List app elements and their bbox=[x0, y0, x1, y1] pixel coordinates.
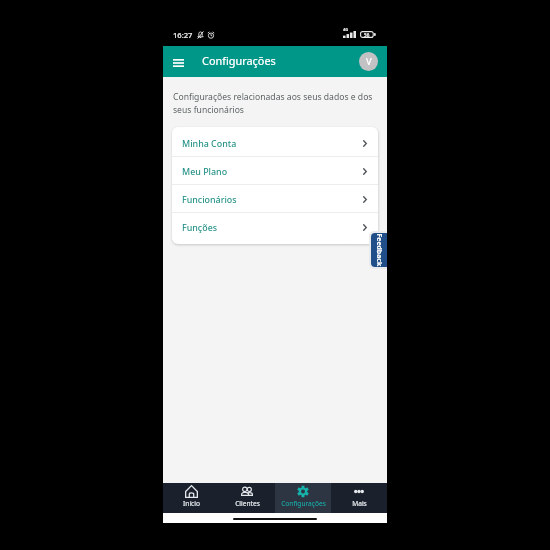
button[interactable]: Funções bbox=[172, 213, 378, 241]
staticText: Configurações bbox=[202, 53, 276, 68]
button[interactable]: Meu Plano bbox=[172, 157, 378, 185]
button[interactable]: Profile bbox=[359, 52, 378, 71]
staticText: Configurações bbox=[281, 499, 326, 508]
staticText: 16:27 bbox=[173, 30, 193, 40]
button[interactable]: Clientes bbox=[219, 483, 275, 513]
button[interactable]: Menu bbox=[166, 51, 190, 75]
staticText: Feedback bbox=[374, 233, 383, 266]
button[interactable]: Configurações bbox=[275, 483, 331, 513]
staticText: Mais bbox=[352, 499, 367, 508]
button[interactable]: Minha Conta bbox=[172, 129, 378, 157]
staticText: Funções bbox=[182, 221, 218, 233]
staticText: Configurações relacionadas aos seus dado… bbox=[173, 91, 377, 116]
staticText: 56 bbox=[364, 32, 370, 38]
staticText: V bbox=[366, 55, 372, 68]
staticText: Minha Conta bbox=[182, 137, 237, 149]
button[interactable]: Funcionários bbox=[172, 185, 378, 213]
staticText: Funcionários bbox=[182, 193, 237, 205]
staticText: Meu Plano bbox=[182, 165, 228, 177]
button[interactable]: Mais bbox=[331, 483, 387, 513]
staticText: 4G bbox=[343, 27, 349, 32]
staticText: Clientes bbox=[235, 499, 260, 508]
button[interactable]: Feedback bbox=[369, 231, 387, 269]
button[interactable]: Início bbox=[163, 483, 219, 513]
staticText: Início bbox=[183, 499, 200, 508]
